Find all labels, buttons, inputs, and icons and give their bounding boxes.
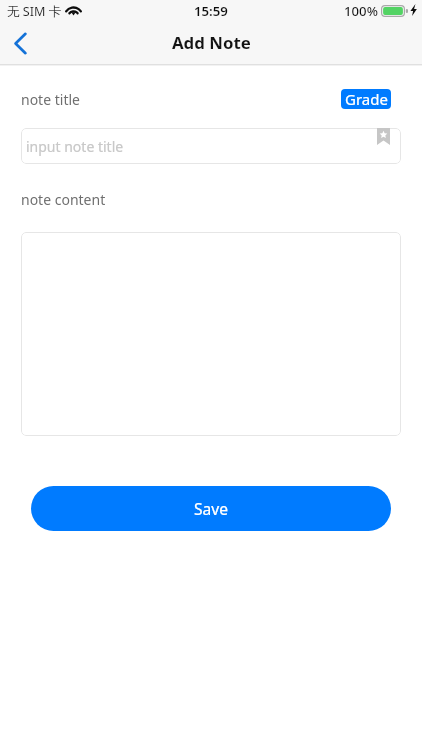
staticText: 无 SIM 卡 <box>7 3 62 20</box>
staticText: Grade <box>345 89 388 109</box>
button[interactable]: Save <box>31 486 391 531</box>
staticText: Add Note <box>172 31 251 54</box>
staticText: 15:59 <box>194 2 228 20</box>
button[interactable]: Grade <box>341 89 391 109</box>
button[interactable] <box>21 232 401 436</box>
button[interactable]: Back <box>1 25 39 61</box>
staticText: 100% <box>344 2 378 20</box>
staticText: Save <box>194 498 229 519</box>
staticText: input note title <box>26 137 124 156</box>
staticText: note title <box>21 90 80 109</box>
button[interactable]: input note title <box>21 128 401 164</box>
button[interactable]: Mark as favourite <box>377 128 390 145</box>
staticText: note content <box>21 190 106 209</box>
